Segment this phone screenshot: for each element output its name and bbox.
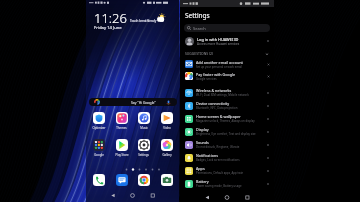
- staticText: Apps: [196, 166, 205, 171]
- staticText: Sounds: [196, 140, 209, 145]
- staticText: Home screen & wallpaper: [196, 114, 241, 119]
- staticText: Touch breathlessly: [130, 19, 157, 23]
- staticText: Gallery: [162, 153, 172, 157]
- staticText: Log in with HUAWEI ID: [197, 37, 239, 42]
- staticText: Optimizer: [92, 126, 106, 130]
- staticText: Wi-Fi, Dual SIM settings, Mobile network: [196, 93, 249, 97]
- staticText: Device connectivity: [196, 101, 230, 106]
- button[interactable]: Themes: [113, 112, 130, 130]
- staticText: Display: [196, 127, 209, 132]
- staticText: Battery: [196, 179, 209, 184]
- button[interactable]: [138, 174, 150, 186]
- staticText: Say "Hi Google": [131, 100, 156, 105]
- staticText: Google services: [196, 77, 217, 81]
- staticText: Google: [94, 153, 104, 157]
- staticText: Music: [140, 126, 148, 130]
- staticText: Video: [163, 126, 171, 130]
- button[interactable]: Log in with HUAWEI ID: [180, 35, 274, 47]
- button[interactable]: Video: [158, 112, 175, 130]
- button[interactable]: Play Store: [113, 139, 130, 157]
- button[interactable]: Optimizer: [90, 112, 107, 130]
- button[interactable]: Battery: [180, 177, 274, 190]
- staticText: Friday 14 June: [94, 25, 122, 31]
- staticText: Badges, Lock screen notifications: [196, 158, 240, 162]
- staticText: Play Store: [115, 153, 129, 157]
- staticText: Settings: [138, 153, 149, 157]
- staticText: Pay faster with Google: [196, 72, 235, 77]
- button[interactable]: Notifications: [180, 151, 274, 164]
- button[interactable]: Pay faster with Google: [180, 70, 274, 82]
- button[interactable]: [161, 174, 173, 186]
- staticText: Brightness, Eye comfort, Text and displa…: [196, 132, 256, 136]
- staticText: Add another email account: [196, 60, 243, 65]
- button[interactable]: Display: [180, 125, 274, 138]
- staticText: Themes: [116, 126, 127, 130]
- button[interactable]: Google: [90, 139, 107, 157]
- staticText: Bluetooth, NFC, Data projection: [196, 106, 238, 110]
- button[interactable]: Settings: [135, 139, 152, 157]
- staticText: Access more Huawei services: [197, 42, 240, 46]
- staticText: Magazine unlock, Themes, Always on displ…: [196, 119, 255, 123]
- button[interactable]: Music: [135, 112, 152, 130]
- staticText: Do not disturb, Ringtone, Vibrate: [196, 145, 240, 149]
- button[interactable]: Say "Hi Google": [89, 98, 177, 106]
- staticText: Permissions, Default apps, App twin: [196, 171, 244, 175]
- button[interactable]: Search: [184, 24, 270, 32]
- staticText: SUGGESTIONS (2): [185, 51, 213, 56]
- button[interactable]: Apps: [180, 164, 274, 177]
- button[interactable]: [93, 174, 105, 186]
- staticText: Search: [193, 26, 206, 31]
- staticText: Power saving mode, Battery usage: [196, 184, 242, 188]
- staticText: Notifications: [196, 153, 218, 158]
- button[interactable]: Home screen & wallpaper: [180, 112, 274, 125]
- staticText: 11:26: [94, 9, 127, 27]
- button[interactable]: Device connectivity: [180, 99, 274, 112]
- button[interactable]: [116, 174, 128, 186]
- staticText: Wireless & networks: [196, 88, 232, 93]
- button[interactable]: Wireless & networks: [180, 86, 274, 99]
- button[interactable]: Sounds: [180, 138, 274, 151]
- button[interactable]: Gallery: [158, 139, 175, 157]
- staticText: Set up your personal or work email: [196, 65, 243, 69]
- button[interactable]: Add another email account: [180, 58, 274, 70]
- staticText: Settings: [185, 11, 210, 20]
